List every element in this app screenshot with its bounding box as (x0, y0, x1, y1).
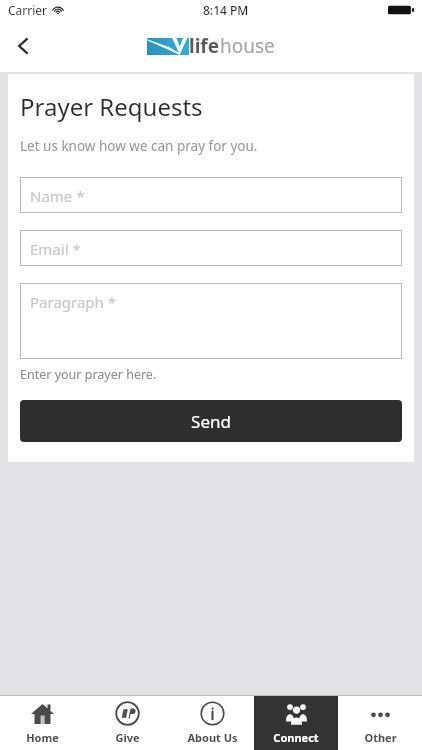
staticText: Name * (30, 186, 85, 206)
button[interactable]: About Us (170, 696, 254, 750)
staticText: About Us (187, 730, 238, 745)
button[interactable]: Home (0, 696, 85, 750)
staticText: Let us know how we can pray for you. (20, 137, 258, 155)
other: Connect (284, 701, 309, 726)
staticText: Carrier (8, 2, 48, 18)
staticText: Prayer Requests (20, 90, 203, 123)
button[interactable]: Name * (20, 177, 402, 213)
staticText: Connect (273, 730, 319, 745)
staticText: house (220, 33, 275, 59)
staticText: Paragraph * (30, 292, 116, 312)
button[interactable]: Other (338, 696, 422, 750)
button[interactable]: Back (0, 22, 48, 70)
button[interactable]: Send (20, 400, 402, 442)
staticText: life (189, 33, 220, 59)
button[interactable]: Email * (20, 230, 402, 266)
staticText: Send (191, 410, 231, 433)
button[interactable]: Connect (254, 696, 338, 750)
staticText: Email * (30, 239, 81, 259)
button[interactable]: Give (85, 696, 170, 750)
staticText: Other (364, 730, 397, 745)
staticText: Home (26, 730, 59, 745)
staticText: 8:14 PM (203, 2, 249, 18)
button[interactable]: Paragraph * (20, 283, 402, 359)
staticText: Give (115, 730, 140, 745)
staticText: Enter your prayer here. (20, 366, 157, 383)
